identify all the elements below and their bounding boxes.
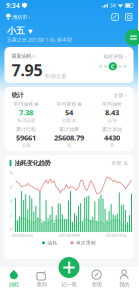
staticText: 54 xyxy=(65,107,73,117)
staticText: 34 xyxy=(110,2,116,9)
button[interactable]: 潍坊市 › xyxy=(6,13,30,21)
staticText: 五菱之光 2013款 1.0L 基本型 xyxy=(7,36,72,43)
staticText: 累计加油 xyxy=(102,126,122,132)
staticText: 累计油费 xyxy=(59,126,79,132)
staticText: 记一笔 xyxy=(61,281,76,288)
staticText: 元/升 xyxy=(107,117,117,123)
staticText: 6 xyxy=(10,184,12,190)
staticText: 发现 xyxy=(92,281,102,288)
button[interactable]: 油耗 xyxy=(0,266,28,290)
staticText: 7.38 xyxy=(19,107,33,117)
staticText: 全部 ⇅ xyxy=(111,160,127,166)
button[interactable]: 小五 ▾ xyxy=(0,25,138,43)
staticText: 查询 xyxy=(36,281,46,288)
staticText: 4430 xyxy=(104,132,120,143)
button[interactable]: 分享 xyxy=(112,14,118,20)
staticText: 平均油价 xyxy=(102,101,122,107)
staticText: 2020年4月6日 xyxy=(11,233,32,238)
staticText: 油耗 xyxy=(9,281,19,288)
staticText: 9:34 xyxy=(6,1,20,10)
staticText: 单次里程 xyxy=(76,240,96,246)
staticText: 8 xyxy=(10,170,12,175)
staticText: 潍坊市 › xyxy=(12,13,30,21)
button[interactable]: 发现 xyxy=(83,266,110,290)
staticText: 公里 xyxy=(22,143,30,148)
button[interactable]: 统计 xyxy=(4,87,133,101)
staticText: ? xyxy=(35,101,37,107)
staticText: 7.95 xyxy=(11,59,42,81)
staticText: 59661 xyxy=(16,132,36,143)
button[interactable]: 记一笔 xyxy=(55,266,83,290)
staticText: 油耗变化趋势 xyxy=(14,159,50,167)
staticText: 25608.79 xyxy=(54,132,84,143)
staticText: 2021年6月8日 xyxy=(58,233,79,238)
staticText: 2 xyxy=(10,212,12,218)
staticText: 油耗 xyxy=(47,240,57,246)
staticText: C xyxy=(111,62,115,70)
button[interactable]: 我的 xyxy=(110,266,138,290)
staticText: ? xyxy=(78,101,80,107)
button[interactable]: 快捷操作 xyxy=(121,29,138,46)
staticText: 累计行程 xyxy=(16,126,36,132)
staticText: 2023年1月3日 xyxy=(105,233,126,238)
staticText: 最新油耗 › xyxy=(11,52,34,59)
staticText: 0 xyxy=(10,227,12,232)
button[interactable]: 全部 ⇅ xyxy=(111,160,127,166)
staticText: 升/百公里 xyxy=(44,73,66,79)
button[interactable]: 记一笔 xyxy=(58,257,79,278)
staticText: 4 xyxy=(10,198,12,204)
staticText: 升/百公里 xyxy=(17,117,35,123)
staticText: 8.43 xyxy=(105,107,119,117)
button[interactable]: 查询 xyxy=(28,266,55,290)
staticText: 能耗评级 › xyxy=(103,53,126,60)
staticText: 小五 ▾ xyxy=(7,25,33,36)
button[interactable]: 设置 xyxy=(125,14,132,20)
staticText: 元 xyxy=(67,143,71,148)
staticText: 公里/次 xyxy=(62,117,76,123)
staticText: 统计 xyxy=(11,91,23,99)
staticText: 我的 xyxy=(119,281,129,288)
staticText: 平均油耗 xyxy=(13,101,33,107)
staticText: 升 xyxy=(110,143,114,148)
staticText: 平均里程 xyxy=(56,101,76,107)
staticText: 全部 › xyxy=(113,92,126,98)
